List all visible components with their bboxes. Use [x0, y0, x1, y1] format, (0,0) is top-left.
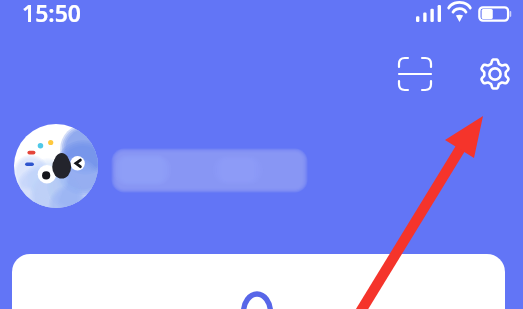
- button[interactable]: Settings: [473, 52, 517, 96]
- button[interactable]: Profile avatar: [14, 124, 98, 208]
- staticText: 15:50: [22, 0, 81, 23]
- button[interactable]: Account name: [112, 148, 307, 193]
- button[interactable]: Scan: [393, 52, 437, 96]
